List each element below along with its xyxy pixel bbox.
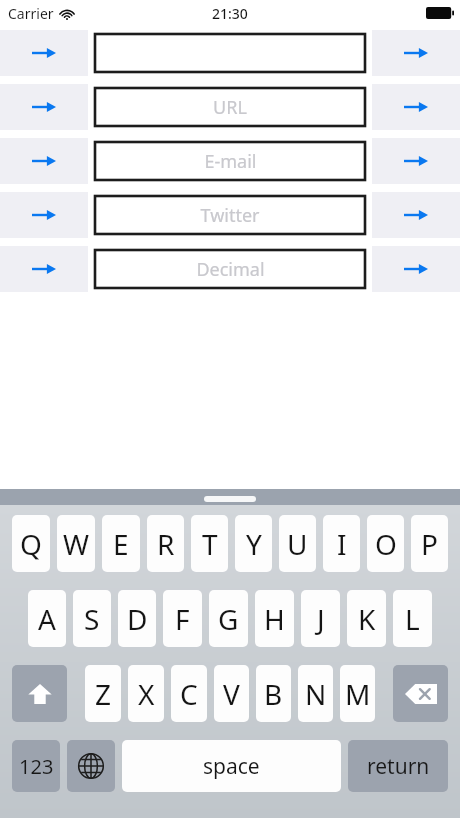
button[interactable]: URL <box>95 88 365 126</box>
button[interactable]: M <box>340 665 375 722</box>
button[interactable]: Q <box>12 515 50 572</box>
button[interactable]: L <box>393 590 432 647</box>
button[interactable]: Previous field <box>0 84 88 130</box>
button[interactable]: Previous field <box>0 192 88 238</box>
button[interactable]: P <box>411 515 448 572</box>
staticText: Carrier <box>8 4 54 23</box>
button[interactable]: J <box>301 590 340 647</box>
staticText: 123 <box>19 753 54 780</box>
button[interactable]: space <box>122 740 341 792</box>
staticText: 21:30 <box>212 4 248 23</box>
staticText: A <box>38 600 56 638</box>
button[interactable]: G <box>209 590 248 647</box>
button[interactable]: Shift <box>12 665 67 722</box>
staticText: K <box>358 600 376 638</box>
staticText: U <box>287 525 308 563</box>
staticText: G <box>218 600 239 638</box>
staticText: F <box>175 600 190 638</box>
staticText: Z <box>95 675 112 713</box>
staticText: N <box>305 675 327 713</box>
staticText: X <box>138 675 155 713</box>
staticText: W <box>63 525 90 563</box>
button[interactable]: F <box>163 590 202 647</box>
staticText: P <box>421 525 438 563</box>
button[interactable]: A <box>28 590 66 647</box>
button[interactable]: Switch keyboard language <box>67 740 115 792</box>
staticText: B <box>264 675 283 713</box>
button[interactable]: Keyboard handle <box>204 496 256 502</box>
button[interactable]: Backspace <box>393 665 448 722</box>
button[interactable]: R <box>147 515 184 572</box>
button[interactable]: V <box>214 665 249 722</box>
staticText: O <box>375 525 397 563</box>
button[interactable] <box>95 34 365 72</box>
button[interactable]: Z <box>85 665 121 722</box>
button[interactable]: O <box>367 515 404 572</box>
staticText: return <box>367 752 430 781</box>
staticText: space <box>203 752 260 781</box>
staticText: R <box>157 525 175 563</box>
button[interactable]: B <box>256 665 291 722</box>
button[interactable]: S <box>73 590 111 647</box>
button[interactable]: Previous field <box>0 138 88 184</box>
button[interactable]: E-mail <box>95 142 365 180</box>
staticText: D <box>127 600 148 638</box>
button[interactable]: Decimal <box>95 250 365 288</box>
staticText: T <box>202 525 218 563</box>
button[interactable]: Next field <box>372 138 460 184</box>
staticText: E <box>113 525 129 563</box>
button[interactable]: C <box>171 665 207 722</box>
button[interactable]: W <box>57 515 95 572</box>
button[interactable]: return <box>348 740 448 792</box>
staticText: E-mail <box>204 149 257 174</box>
button[interactable]: H <box>255 590 294 647</box>
button[interactable]: Next field <box>372 192 460 238</box>
staticText: H <box>264 600 285 638</box>
staticText: M <box>345 675 371 713</box>
button[interactable]: Twitter <box>95 196 365 234</box>
staticText: Twitter <box>200 203 260 228</box>
button[interactable]: N <box>298 665 333 722</box>
button[interactable]: Next field <box>372 30 460 76</box>
button[interactable]: X <box>128 665 164 722</box>
button[interactable]: T <box>191 515 228 572</box>
staticText: J <box>317 600 325 638</box>
button[interactable]: Next field <box>372 84 460 130</box>
staticText: L <box>405 600 420 638</box>
button[interactable]: Y <box>235 515 272 572</box>
staticText: S <box>84 600 100 638</box>
button[interactable]: Previous field <box>0 246 88 292</box>
staticText: URL <box>213 95 247 120</box>
button[interactable]: Next field <box>372 246 460 292</box>
staticText: Decimal <box>196 257 265 282</box>
staticText: C <box>180 675 198 713</box>
button[interactable]: K <box>347 590 386 647</box>
button[interactable]: 123 <box>12 740 60 792</box>
button[interactable]: E <box>102 515 140 572</box>
button[interactable]: U <box>279 515 316 572</box>
button[interactable]: D <box>118 590 156 647</box>
staticText: V <box>223 675 240 713</box>
button[interactable]: I <box>323 515 360 572</box>
staticText: Y <box>246 525 262 563</box>
staticText: Q <box>20 525 42 563</box>
button[interactable]: Previous field <box>0 30 88 76</box>
staticText: I <box>337 525 347 563</box>
